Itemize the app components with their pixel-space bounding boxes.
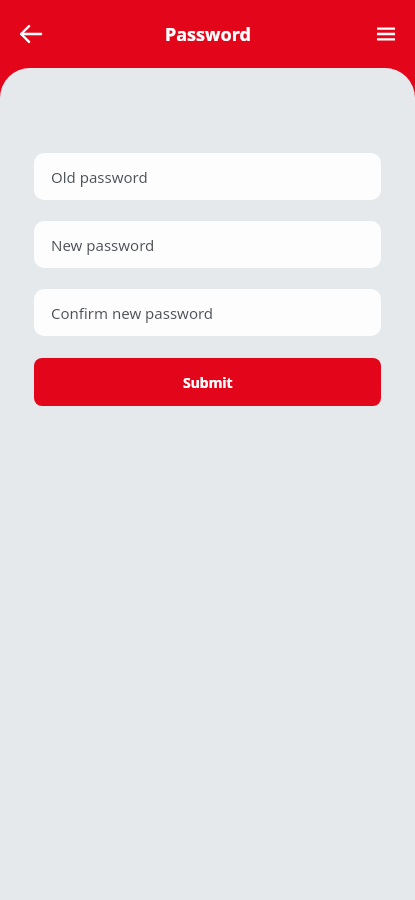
button[interactable]: Submit: [34, 358, 381, 406]
staticText: New password: [51, 235, 155, 255]
button[interactable]: Confirm new password: [34, 289, 381, 336]
button[interactable]: New password: [34, 221, 381, 268]
staticText: Confirm new password: [51, 303, 214, 323]
staticText: Password: [165, 22, 251, 47]
button[interactable]: Back: [10, 13, 52, 55]
button[interactable]: Old password: [34, 153, 381, 200]
staticText: Submit: [183, 373, 233, 392]
staticText: Old password: [51, 167, 148, 187]
button[interactable]: Menu: [365, 13, 407, 55]
